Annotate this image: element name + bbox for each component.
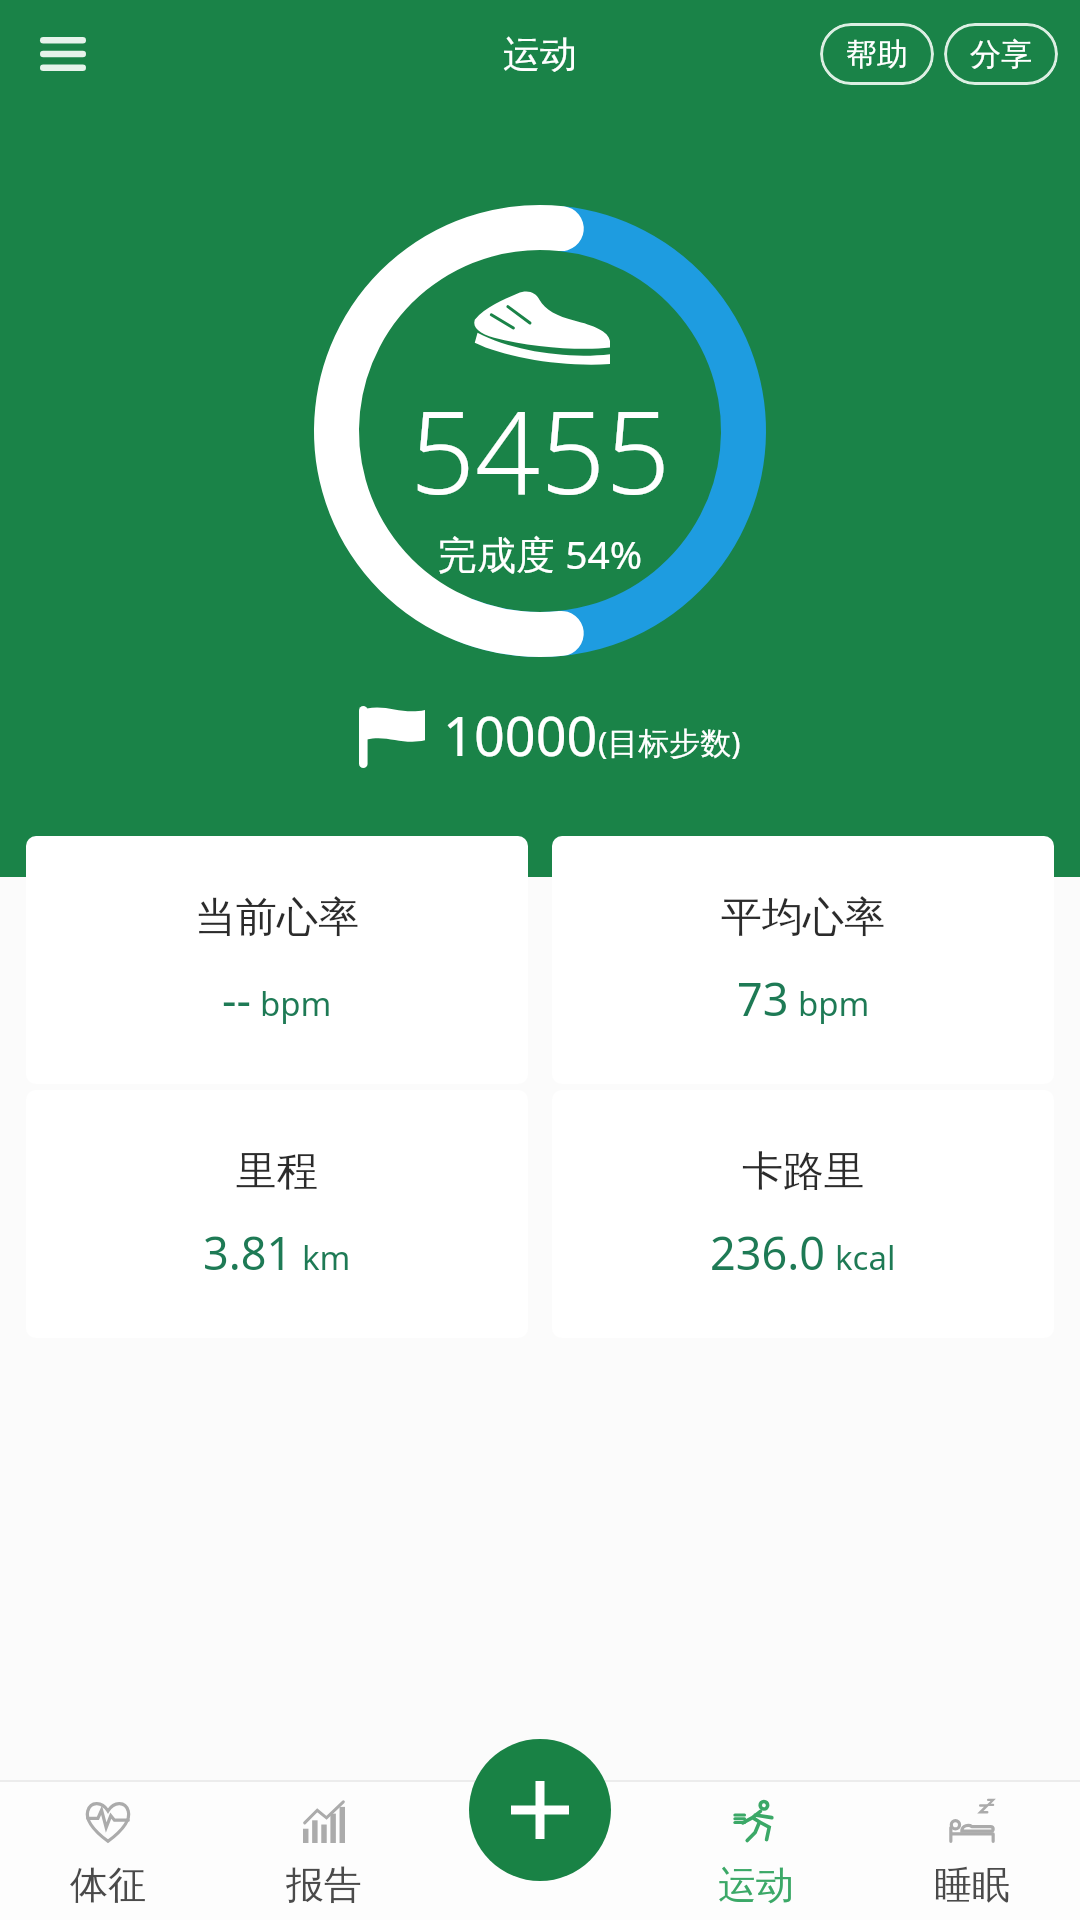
other: 报告 <box>295 1793 353 1851</box>
staticText: 平均心率 <box>721 892 885 944</box>
staticText: 体征 <box>70 1861 146 1909</box>
button[interactable]: Menu <box>20 11 106 97</box>
staticText: 睡眠 <box>934 1861 1010 1909</box>
staticText: 运动 <box>718 1861 794 1909</box>
button[interactable]: 帮助 <box>820 23 934 85</box>
staticText: 里程 <box>236 1146 318 1198</box>
staticText: 3.81 <box>203 1222 293 1283</box>
button[interactable]: 当前心率 <box>26 836 528 1084</box>
staticText: 运动 <box>503 31 577 78</box>
staticText: 10000 <box>443 698 598 772</box>
staticText: 完成度 54% <box>438 527 643 580</box>
staticText: 73 <box>737 968 789 1029</box>
staticText: 报告 <box>286 1861 362 1909</box>
other: 体征 <box>79 1793 137 1851</box>
other: 睡眠 <box>943 1793 1001 1851</box>
button[interactable]: 平均心率 <box>552 836 1054 1084</box>
staticText: bpm <box>798 981 870 1026</box>
button[interactable]: Add <box>469 1739 611 1881</box>
staticText: bpm <box>260 981 332 1026</box>
staticText: 卡路里 <box>742 1146 865 1198</box>
staticText: 5455 <box>410 372 671 527</box>
button[interactable]: 报告 <box>216 1782 432 1920</box>
button[interactable]: 运动 <box>648 1782 864 1920</box>
button[interactable]: 里程 <box>26 1090 528 1338</box>
button[interactable]: 体征 <box>0 1782 216 1920</box>
staticText: (目标步数) <box>598 721 741 763</box>
staticText: 分享 <box>970 35 1032 74</box>
staticText: 帮助 <box>846 35 908 74</box>
staticText: kcal <box>835 1235 896 1280</box>
other: 运动 <box>727 1793 785 1851</box>
staticText: -- <box>222 968 251 1029</box>
button[interactable]: 睡眠 <box>864 1782 1080 1920</box>
button[interactable]: 分享 <box>944 23 1058 85</box>
button[interactable]: 10000 <box>359 698 741 772</box>
staticText: km <box>302 1235 351 1280</box>
button[interactable]: 卡路里 <box>552 1090 1054 1338</box>
staticText: 236.0 <box>710 1222 826 1283</box>
staticText: 当前心率 <box>195 892 359 944</box>
